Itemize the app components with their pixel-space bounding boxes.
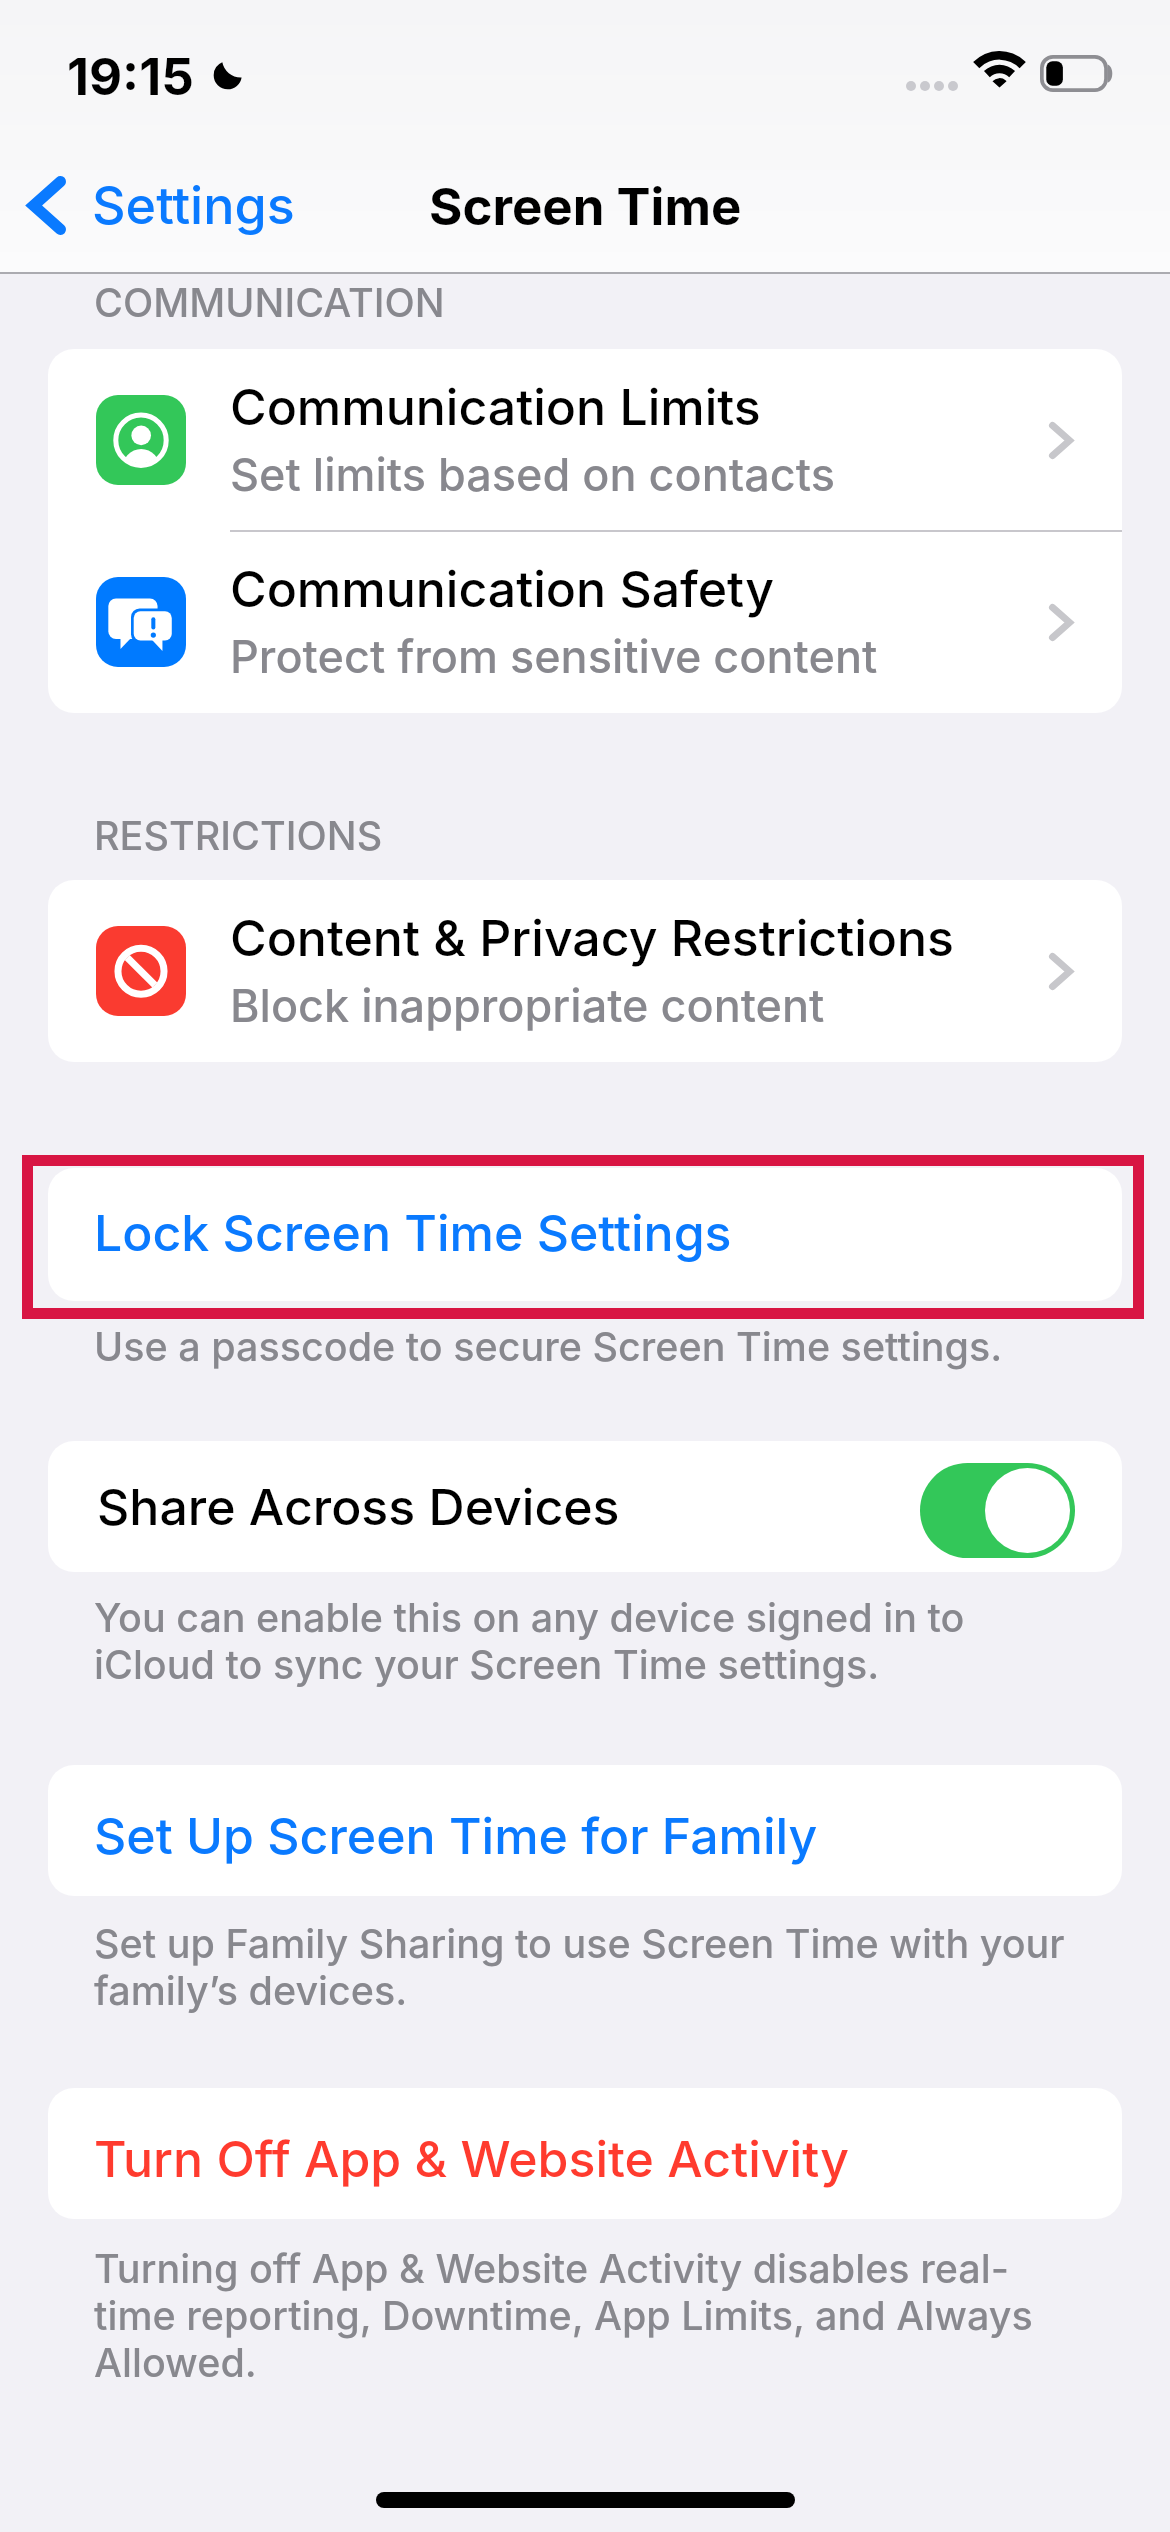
button[interactable]: Content & Privacy Restrictions bbox=[48, 880, 1122, 1062]
staticText: Communication Safety bbox=[230, 559, 774, 619]
staticText: Turning off App & Website Activity disab… bbox=[94, 2245, 1033, 2386]
staticText: Set Up Screen Time for Family bbox=[94, 1806, 818, 1866]
staticText: Settings bbox=[92, 174, 295, 237]
button[interactable]: Communication Safety bbox=[48, 531, 1122, 713]
staticText: Content & Privacy Restrictions bbox=[230, 908, 954, 968]
staticText: Communication Limits bbox=[230, 377, 761, 437]
staticText: Screen Time bbox=[429, 176, 742, 238]
button[interactable]: Share Across Devices bbox=[48, 1441, 1122, 1572]
staticText: Protect from sensitive content bbox=[230, 629, 878, 683]
staticText: 19:15 bbox=[67, 46, 194, 108]
staticText: You can enable this on any device signed… bbox=[94, 1594, 965, 1688]
staticText: Set up Family Sharing to use Screen Time… bbox=[94, 1920, 1065, 2014]
button[interactable]: Set Up Screen Time for Family bbox=[48, 1765, 1122, 1896]
button[interactable]: Communication Limits bbox=[48, 349, 1122, 531]
staticText: Use a passcode to secure Screen Time set… bbox=[94, 1323, 1003, 1371]
staticText: Block inappropriate content bbox=[230, 978, 825, 1032]
staticText: Set limits based on contacts bbox=[230, 447, 835, 501]
staticText: Turn Off App & Website Activity bbox=[94, 2129, 849, 2189]
button[interactable]: Lock Screen Time Settings bbox=[48, 1168, 1122, 1301]
staticText: RESTRICTIONS bbox=[94, 812, 383, 860]
button[interactable]: Turn Off App & Website Activity bbox=[48, 2088, 1122, 2219]
staticText: Lock Screen Time Settings bbox=[94, 1203, 732, 1263]
staticText: COMMUNICATION bbox=[94, 279, 445, 327]
button[interactable]: Back to Settings bbox=[12, 160, 311, 251]
button[interactable]: Share Across Devices toggle, on bbox=[920, 1463, 1075, 1558]
staticText: Share Across Devices bbox=[97, 1477, 620, 1537]
